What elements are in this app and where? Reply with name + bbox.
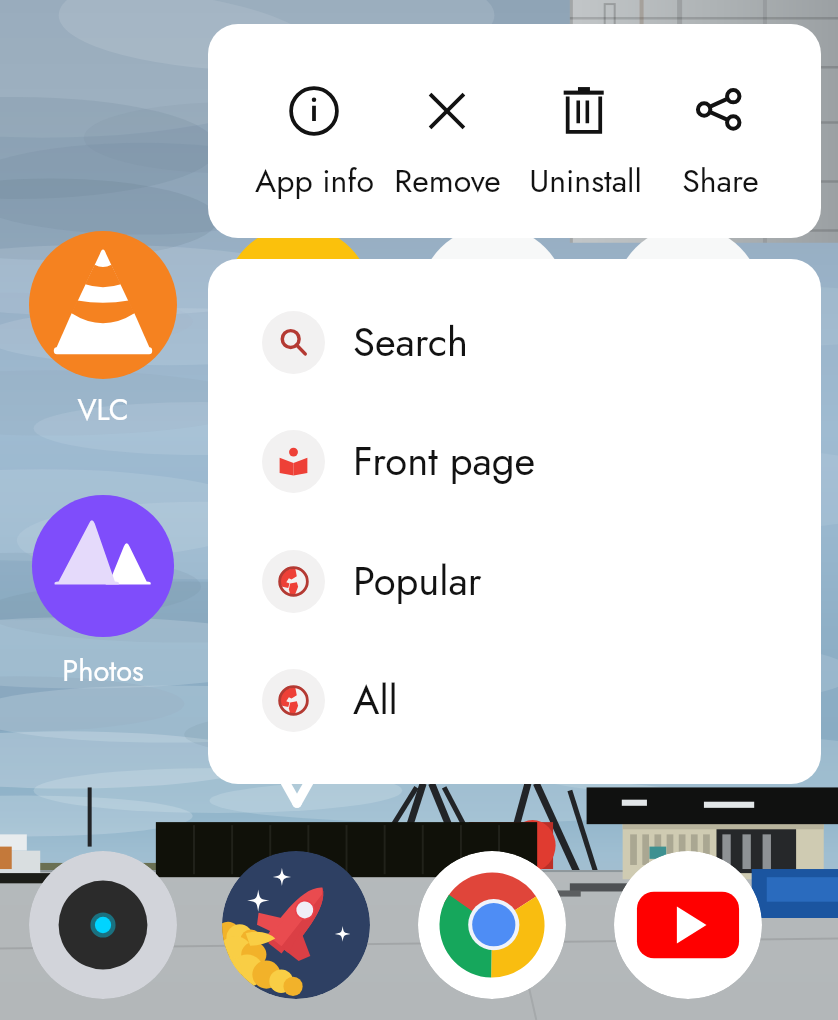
staticText: VLC xyxy=(77,389,129,431)
staticText: Uninstall xyxy=(529,158,642,204)
button[interactable]: Camera xyxy=(29,851,177,999)
button[interactable]: Remove xyxy=(384,24,510,238)
staticText: Photos xyxy=(62,650,144,692)
button[interactable]: Share xyxy=(657,24,783,238)
button[interactable]: All xyxy=(208,640,821,760)
button[interactable]: YouTube xyxy=(614,851,762,999)
staticText: App info xyxy=(255,158,374,204)
button[interactable]: App xyxy=(614,226,762,374)
button[interactable]: App info xyxy=(251,24,377,238)
staticText: Remove xyxy=(394,158,501,204)
button[interactable]: App xyxy=(224,226,372,374)
staticText: All xyxy=(353,671,398,729)
button[interactable]: Photos xyxy=(29,492,177,692)
button[interactable]: Chrome xyxy=(418,851,566,999)
button[interactable]: VLC xyxy=(29,231,177,431)
button[interactable]: Front page xyxy=(208,401,821,521)
staticText: Front page xyxy=(353,432,536,490)
button[interactable]: App xyxy=(419,226,567,374)
staticText: Search xyxy=(353,313,468,371)
button[interactable]: Launcher xyxy=(222,851,370,999)
button[interactable]: Search xyxy=(208,282,821,402)
staticText: Popular xyxy=(353,552,482,610)
button[interactable]: Uninstall xyxy=(517,24,653,238)
button[interactable]: Popular xyxy=(208,521,821,641)
staticText: Share xyxy=(682,158,759,204)
